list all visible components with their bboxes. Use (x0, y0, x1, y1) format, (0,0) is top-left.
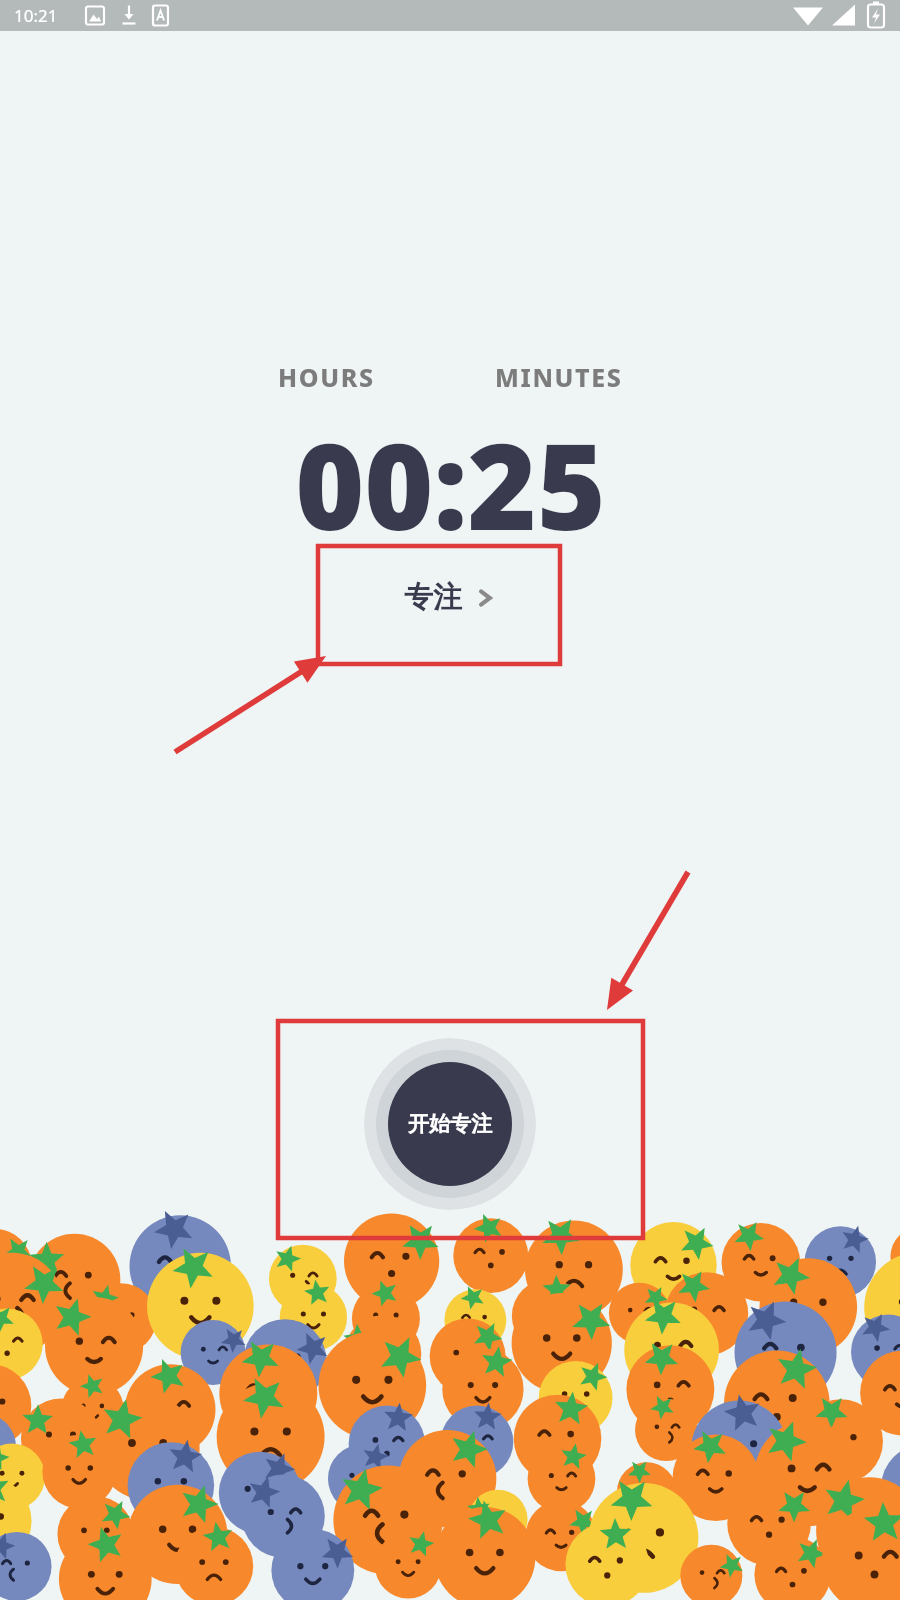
staticText: 10:21 (14, 4, 58, 27)
button[interactable]: 开始专注 (364, 1038, 536, 1210)
staticText: 开始专注 (408, 1111, 492, 1137)
staticText: 专注 (404, 579, 462, 616)
staticText: HOURS (278, 360, 375, 394)
button[interactable]: 专注 (384, 569, 516, 626)
staticText: 00:25 (295, 404, 606, 565)
staticText: MINUTES (495, 360, 623, 394)
